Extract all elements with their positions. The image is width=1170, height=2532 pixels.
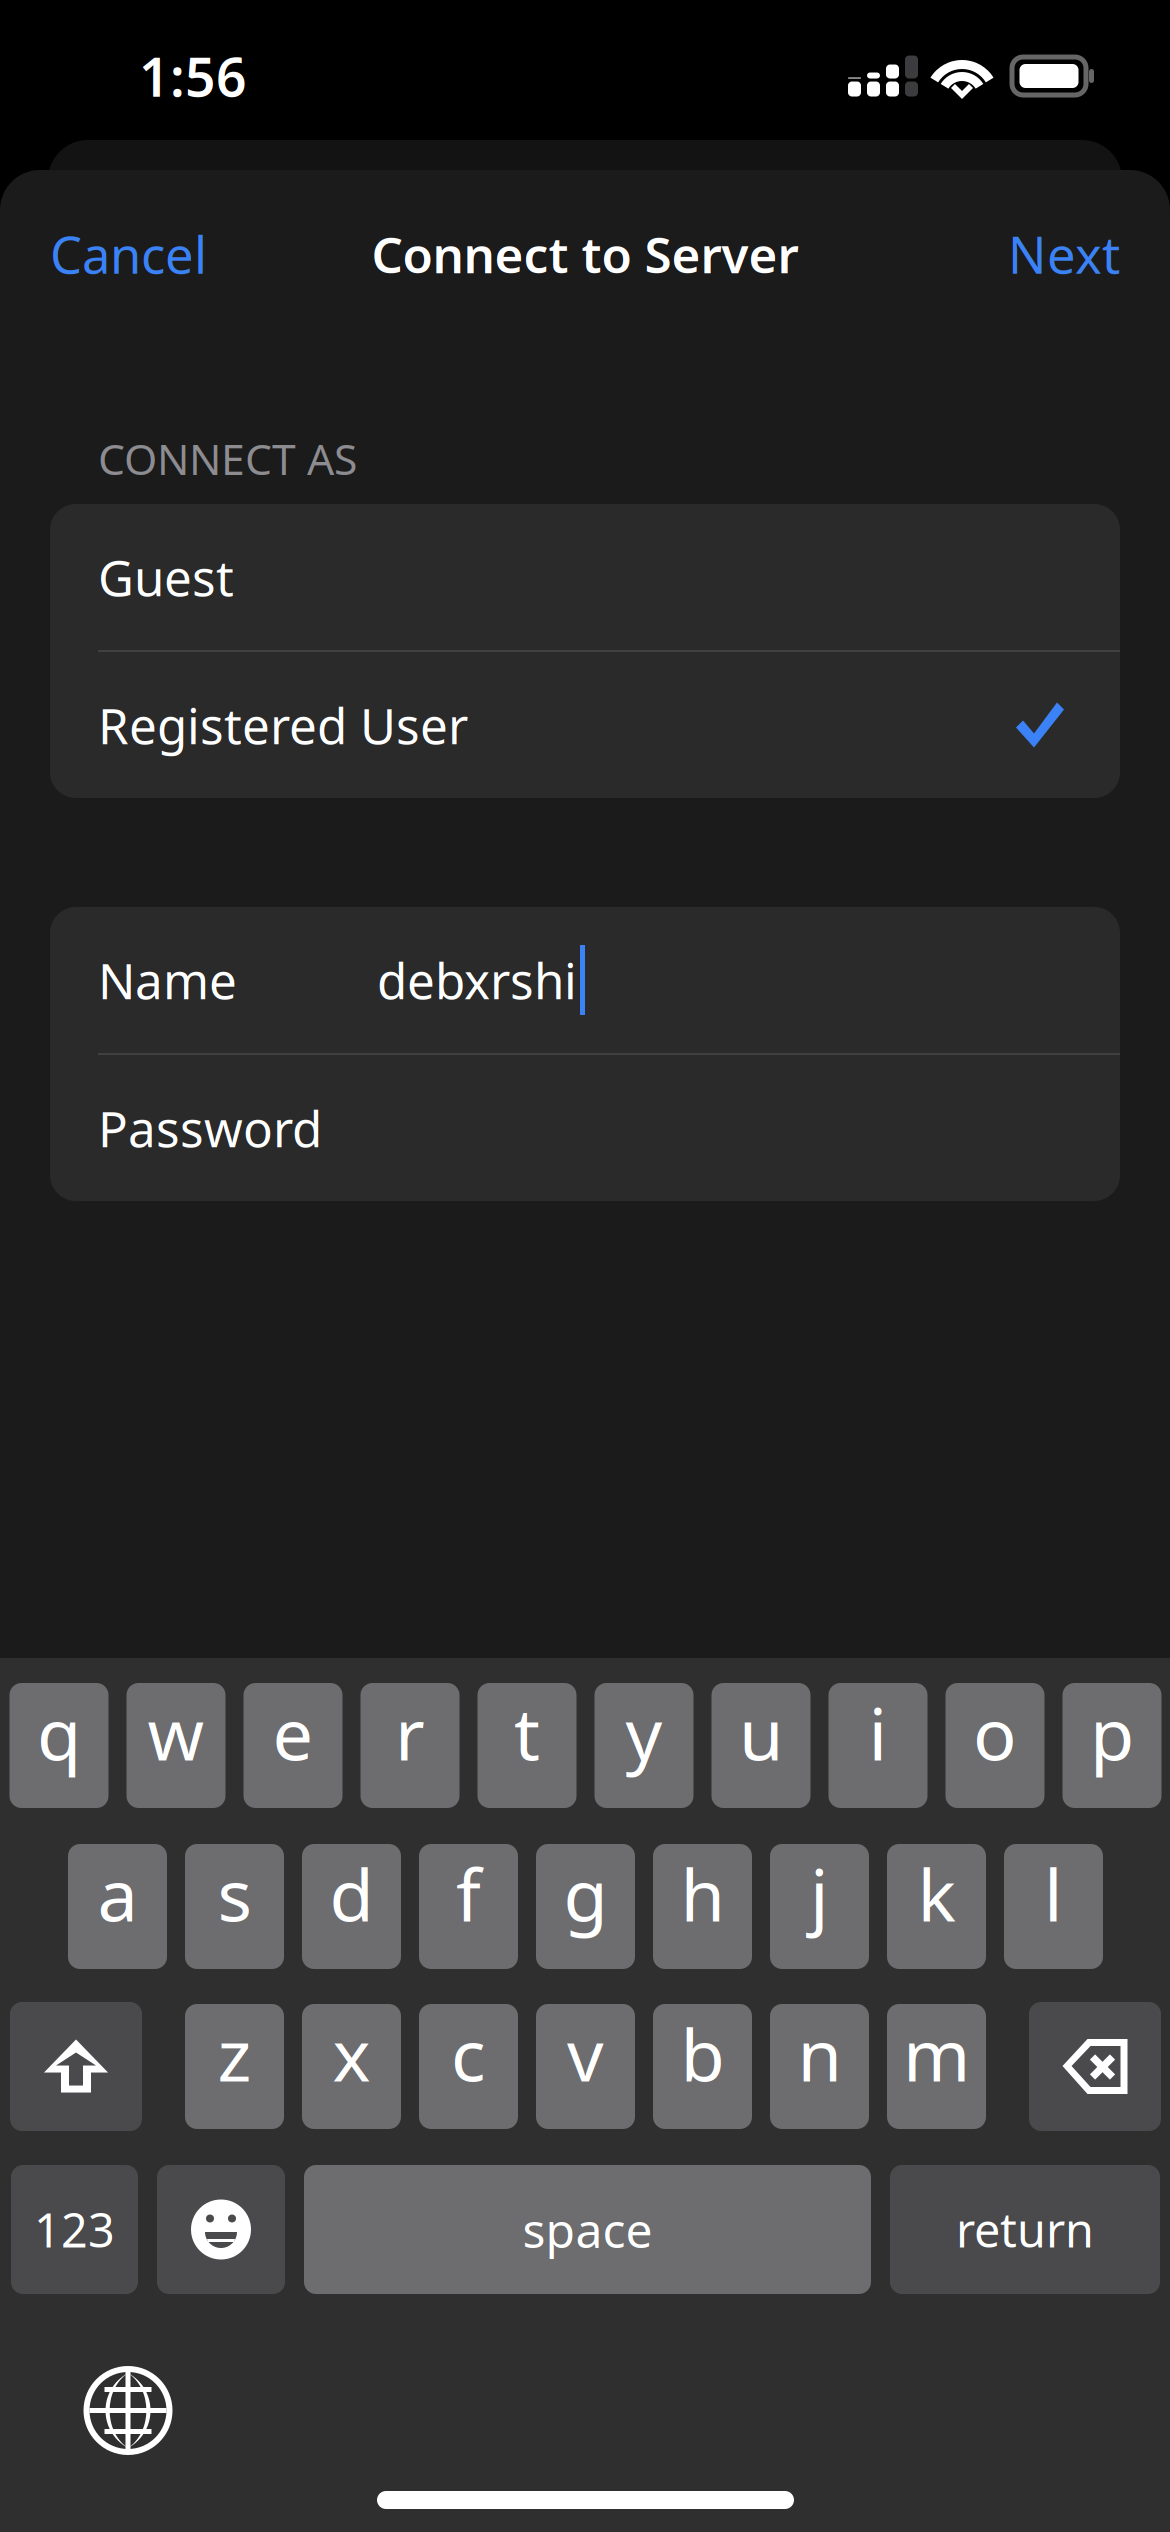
staticText: p bbox=[1090, 1685, 1134, 1780]
staticText: Connect to Server bbox=[371, 221, 798, 287]
staticText: Cancel bbox=[50, 220, 207, 288]
button[interactable]: q bbox=[9, 1683, 108, 1808]
button[interactable]: Name bbox=[50, 907, 1120, 1053]
button[interactable]: i bbox=[828, 1683, 927, 1808]
staticText: space bbox=[522, 2198, 652, 2261]
button[interactable]: w bbox=[126, 1683, 225, 1808]
staticText: e bbox=[272, 1685, 313, 1780]
button[interactable]: l bbox=[1004, 1844, 1103, 1969]
button[interactable]: f bbox=[419, 1844, 518, 1969]
staticText: w bbox=[147, 1685, 204, 1780]
button[interactable]: Cancel bbox=[50, 202, 231, 306]
button[interactable]: return bbox=[890, 2165, 1160, 2294]
staticText: x bbox=[332, 2006, 370, 2101]
button[interactable]: n bbox=[770, 2004, 869, 2129]
staticText: n bbox=[797, 2006, 841, 2101]
button[interactable]: Delete bbox=[1029, 2002, 1161, 2131]
staticText: v bbox=[567, 2006, 604, 2101]
button[interactable]: d bbox=[302, 1844, 401, 1969]
button[interactable]: p bbox=[1062, 1683, 1161, 1808]
button[interactable]: r bbox=[360, 1683, 459, 1808]
button[interactable]: s bbox=[185, 1844, 284, 1969]
button[interactable]: c bbox=[419, 2004, 518, 2129]
staticText: u bbox=[739, 1685, 783, 1780]
staticText: z bbox=[217, 2006, 251, 2101]
button[interactable]: h bbox=[653, 1844, 752, 1969]
staticText: return bbox=[956, 2198, 1094, 2260]
button[interactable]: space bbox=[304, 2165, 871, 2294]
staticText: h bbox=[680, 1846, 724, 1941]
button[interactable]: Registered User bbox=[50, 652, 1120, 798]
button[interactable]: j bbox=[770, 1844, 869, 1969]
staticText: 1:56 bbox=[139, 41, 247, 111]
button[interactable]: v bbox=[536, 2004, 635, 2129]
button[interactable]: Password bbox=[50, 1055, 1120, 1201]
staticText: j bbox=[810, 1846, 829, 1941]
button[interactable]: y bbox=[594, 1683, 693, 1808]
button[interactable]: Next bbox=[984, 202, 1120, 306]
button[interactable]: Next keyboard bbox=[86, 2369, 169, 2452]
staticText: d bbox=[329, 1846, 373, 1941]
staticText: Next bbox=[1008, 220, 1120, 288]
staticText: l bbox=[1044, 1846, 1063, 1941]
button[interactable]: z bbox=[185, 2004, 284, 2129]
staticText: i bbox=[868, 1685, 887, 1780]
staticText: s bbox=[217, 1846, 251, 1941]
staticText: k bbox=[917, 1846, 955, 1941]
button[interactable]: o bbox=[945, 1683, 1044, 1808]
button[interactable]: g bbox=[536, 1844, 635, 1969]
button[interactable]: b bbox=[653, 2004, 752, 2129]
staticText: 123 bbox=[34, 2198, 115, 2260]
staticText: y bbox=[625, 1685, 662, 1780]
staticText: Name bbox=[98, 947, 237, 1013]
button[interactable]: Shift bbox=[10, 2002, 142, 2131]
button[interactable]: Guest bbox=[50, 504, 1120, 650]
staticText: a bbox=[97, 1846, 137, 1941]
button[interactable]: m bbox=[887, 2004, 986, 2129]
button[interactable]: e bbox=[243, 1683, 342, 1808]
staticText: r bbox=[395, 1685, 425, 1780]
staticText: f bbox=[456, 1846, 481, 1941]
button[interactable]: u bbox=[711, 1683, 810, 1808]
staticText: debxrshi bbox=[377, 947, 577, 1013]
staticText: CONNECT AS bbox=[98, 430, 357, 487]
button[interactable]: Emoji bbox=[157, 2165, 285, 2294]
staticText: m bbox=[903, 2006, 970, 2101]
staticText: c bbox=[451, 2006, 486, 2101]
staticText: Password bbox=[98, 1095, 322, 1161]
staticText: g bbox=[563, 1846, 607, 1941]
button[interactable]: x bbox=[302, 2004, 401, 2129]
staticText: Guest bbox=[98, 544, 234, 610]
staticText: t bbox=[514, 1685, 540, 1780]
button[interactable]: a bbox=[68, 1844, 167, 1969]
staticText: o bbox=[973, 1685, 1017, 1780]
staticText: q bbox=[37, 1685, 81, 1780]
button[interactable]: t bbox=[477, 1683, 576, 1808]
button[interactable]: k bbox=[887, 1844, 986, 1969]
staticText: b bbox=[680, 2006, 724, 2101]
button[interactable]: Numbers bbox=[11, 2165, 138, 2294]
staticText: Registered User bbox=[98, 692, 468, 758]
